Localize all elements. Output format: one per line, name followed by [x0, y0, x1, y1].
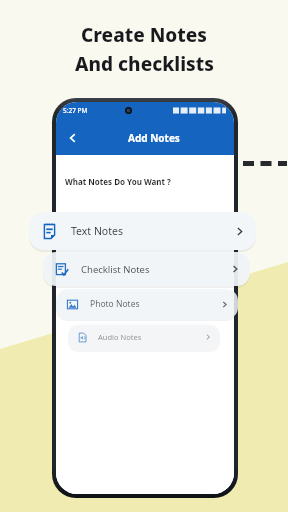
staticText: What Notes Do You Want ? — [65, 176, 171, 187]
staticText: Photo Notes — [90, 298, 140, 310]
staticText: 5:27 PM — [63, 106, 88, 115]
button[interactable]: Audio Notes — [68, 324, 220, 350]
staticText: And checklists — [75, 51, 214, 77]
button[interactable]: Text Notes — [29, 212, 256, 250]
staticText: Text Notes — [71, 224, 123, 238]
button[interactable]: Back — [62, 127, 84, 149]
staticText: Audio Notes — [98, 332, 142, 342]
staticText: Checklist Notes — [81, 263, 150, 276]
staticText: Create Notes — [81, 22, 207, 48]
staticText: Add Notes — [128, 131, 180, 145]
button[interactable]: Checklist Notes — [43, 252, 250, 286]
button[interactable]: Photo Notes — [56, 289, 238, 319]
